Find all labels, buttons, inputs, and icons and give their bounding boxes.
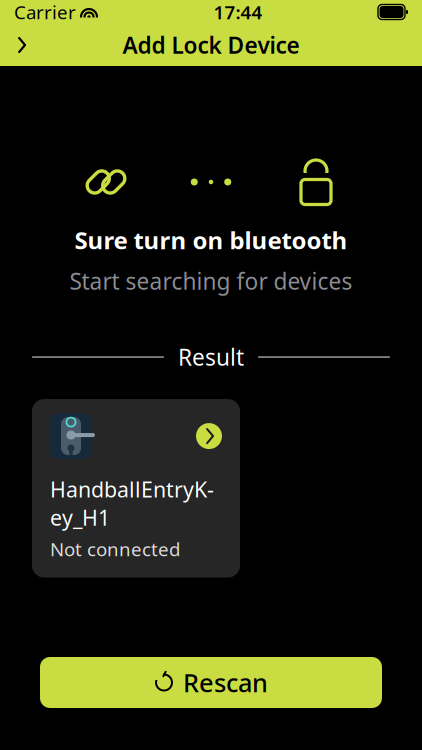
- staticText: HandballEntryKey_H1: [50, 475, 214, 532]
- staticText: 17:44: [213, 0, 262, 24]
- button[interactable]: HandballEntryKey_H1: [32, 399, 240, 578]
- staticText: Start searching for devices: [69, 266, 352, 296]
- staticText: Add Lock Device: [122, 30, 299, 60]
- staticText: Carrier: [14, 0, 76, 24]
- staticText: Rescan: [183, 666, 268, 699]
- button[interactable]: Rescan: [40, 657, 382, 708]
- staticText: Not connected: [50, 537, 180, 561]
- button[interactable]: Back: [0, 26, 44, 64]
- staticText: Result: [178, 342, 244, 372]
- staticText: Sure turn on bluetooth: [74, 224, 347, 256]
